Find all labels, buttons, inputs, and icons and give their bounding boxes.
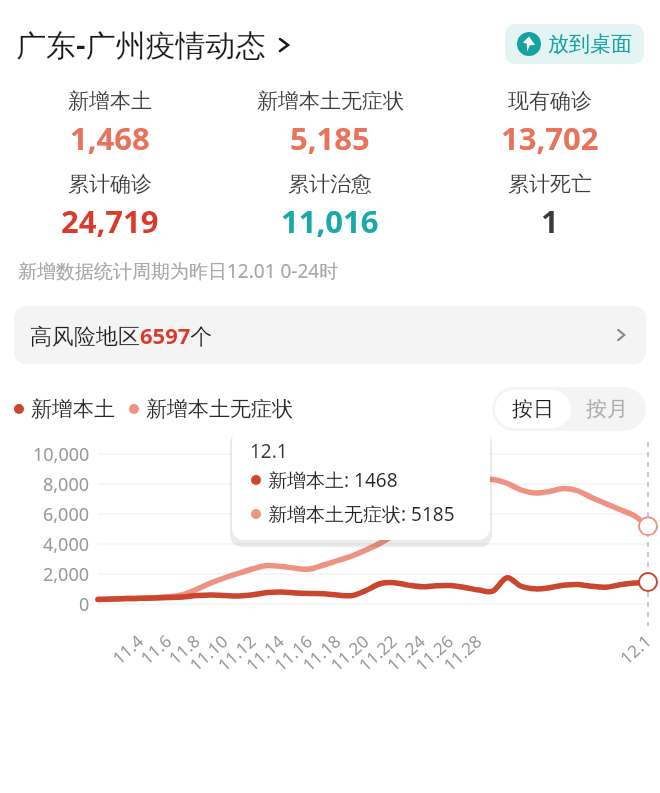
staticText: 放到桌面 [548, 31, 632, 57]
button[interactable]: 放到桌面 [505, 24, 644, 64]
staticText: 高风险地区6597个 [30, 320, 213, 350]
staticText: 新增数据统计周期为昨日12.01 0-24时 [18, 258, 339, 284]
button[interactable]: 按日 [495, 390, 571, 428]
staticText: 累计治愈 [288, 171, 372, 197]
staticText: 新增本土无症状 [146, 396, 293, 422]
staticText: 累计死亡 [508, 171, 592, 197]
staticText: 24,719 [61, 200, 159, 242]
button[interactable]: 累计死亡 [440, 171, 660, 242]
staticText: 新增本土 [31, 396, 115, 422]
staticText: 13,702 [501, 117, 599, 159]
button[interactable]: 累计确诊 [0, 171, 220, 242]
staticText: 按日 [512, 396, 554, 422]
staticText: 累计确诊 [68, 171, 152, 197]
staticText: 现有确诊 [508, 88, 592, 114]
button[interactable]: 高风险地区6597个 [14, 306, 646, 364]
staticText: 1,468 [70, 117, 150, 159]
button[interactable]: 新增本土无症状 [220, 88, 440, 159]
button[interactable]: 新增本土 [0, 88, 220, 159]
button[interactable]: 按月 [571, 390, 643, 428]
button[interactable]: 累计治愈 [220, 171, 440, 242]
staticText: 按月 [586, 396, 628, 422]
staticText: 1 [541, 200, 559, 242]
staticText: 11,016 [281, 200, 379, 242]
staticText: 广东-广州疫情动态 [16, 24, 266, 65]
staticText: 新增本土 [68, 88, 152, 114]
button[interactable]: 现有确诊 [440, 88, 660, 159]
button[interactable]: 广东-广州疫情动态 [16, 24, 294, 65]
staticText: 新增本土无症状 [257, 88, 404, 114]
staticText: 5,185 [290, 117, 370, 159]
